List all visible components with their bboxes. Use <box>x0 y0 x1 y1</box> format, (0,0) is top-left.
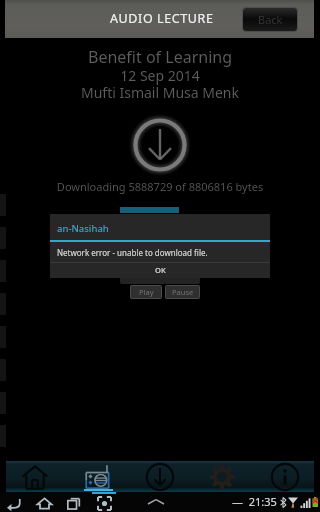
staticText: Back <box>258 12 283 27</box>
other: Back <box>6 496 22 512</box>
button[interactable]: Home <box>4 461 66 492</box>
staticText: Mufti Ismail Musa Menk <box>0 83 320 102</box>
other: Home <box>37 496 52 511</box>
button[interactable]: OK <box>50 263 270 278</box>
staticText: Downloading 5888729 of 8806816 bytes <box>0 179 320 194</box>
button[interactable]: Settings <box>191 461 253 492</box>
other: Recents <box>67 497 81 511</box>
staticText: Benefit of Learning <box>0 46 320 68</box>
staticText: Network error - unable to download file. <box>57 247 208 258</box>
staticText: OK <box>155 265 166 275</box>
staticText: — 21:35 <box>232 494 277 509</box>
button[interactable]: Pause <box>166 286 199 298</box>
staticText: AUDIO LECTURE <box>110 10 214 27</box>
staticText: an-Nasihah <box>57 222 109 235</box>
staticText: 12 Sep 2014 <box>0 66 320 85</box>
staticText: Play <box>139 287 154 297</box>
button[interactable]: Info <box>254 461 316 492</box>
button[interactable]: Radio <box>67 461 129 492</box>
other: Screenshot <box>98 497 111 510</box>
button[interactable]: Play <box>131 286 161 298</box>
staticText: Pause <box>172 287 194 297</box>
button[interactable]: Back <box>243 8 297 31</box>
button[interactable]: Downloads <box>129 461 191 492</box>
